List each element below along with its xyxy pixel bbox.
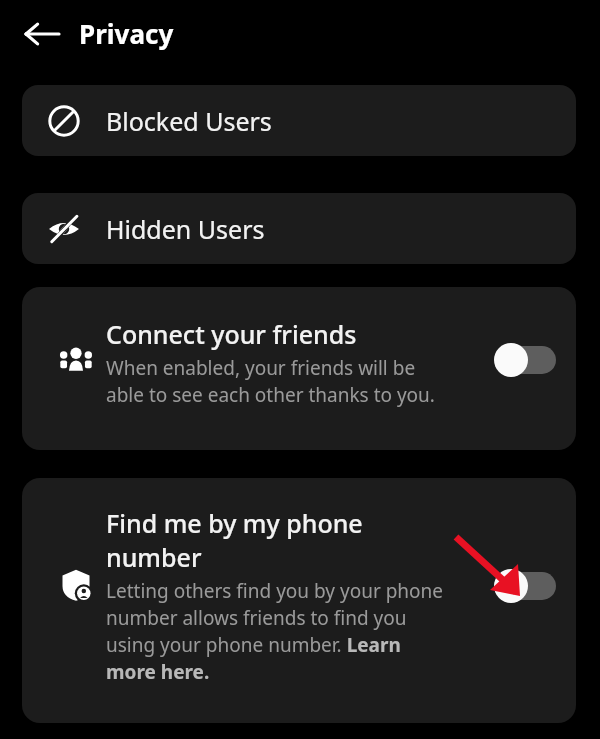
staticText: When enabled, your friends will be able … [106, 355, 451, 408]
staticText: Hidden Users [106, 212, 265, 246]
staticText: Find me by my phone number [106, 506, 451, 574]
button[interactable]: Toggle setting [492, 336, 558, 384]
staticText: Blocked Users [106, 104, 272, 138]
staticText: Connect your friends [106, 317, 357, 351]
button[interactable]: Hidden Users [22, 193, 576, 264]
staticText: Letting others find you by your phone nu… [106, 578, 451, 685]
button[interactable]: Blocked Users [22, 85, 576, 156]
staticText: Privacy [79, 16, 174, 51]
button[interactable]: Back [14, 13, 70, 55]
button[interactable]: Toggle setting [492, 562, 558, 610]
